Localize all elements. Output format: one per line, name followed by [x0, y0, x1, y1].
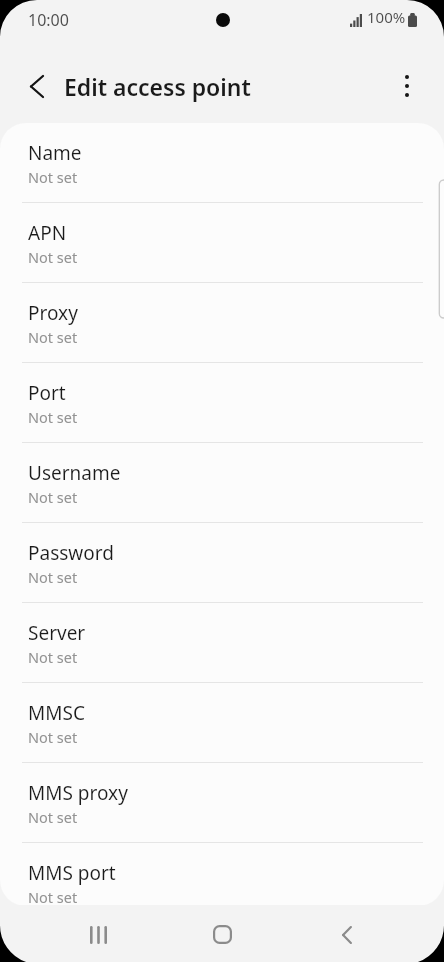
staticText: Not set — [28, 887, 78, 906]
staticText: Port — [28, 380, 66, 406]
staticText: Password — [28, 540, 114, 566]
staticText: APN — [28, 220, 67, 246]
button[interactable]: MMSC — [0, 683, 444, 763]
button[interactable]: MMS port — [0, 843, 444, 906]
staticText: MMSC — [28, 700, 85, 726]
button[interactable]: Proxy — [0, 283, 444, 363]
staticText: 100% — [367, 7, 406, 27]
button[interactable]: Server — [0, 603, 444, 683]
staticText: Not set — [28, 807, 78, 827]
button[interactable]: Home — [194, 905, 251, 962]
button[interactable]: Name — [0, 123, 444, 203]
staticText: Not set — [28, 727, 78, 747]
button[interactable]: Username — [0, 443, 444, 523]
staticText: Edit access point — [64, 71, 251, 102]
staticText: Not set — [28, 327, 78, 347]
staticText: Not set — [28, 247, 78, 267]
button[interactable]: Port — [0, 363, 444, 443]
staticText: Server — [28, 620, 86, 646]
staticText: Name — [28, 140, 82, 166]
staticText: MMS proxy — [28, 780, 128, 806]
staticText: Not set — [28, 167, 78, 187]
staticText: Proxy — [28, 300, 78, 326]
staticText: Not set — [28, 647, 78, 667]
staticText: Username — [28, 460, 121, 486]
button[interactable]: More options — [384, 63, 430, 109]
button[interactable]: Navigate up — [14, 63, 60, 109]
button[interactable]: Recent apps — [70, 905, 127, 962]
staticText: Not set — [28, 567, 78, 587]
button[interactable]: Password — [0, 523, 444, 603]
button[interactable]: Back — [318, 905, 375, 962]
staticText: Not set — [28, 487, 78, 507]
button[interactable]: APN — [0, 203, 444, 283]
staticText: MMS port — [28, 860, 116, 886]
button[interactable]: MMS proxy — [0, 763, 444, 843]
staticText: Not set — [28, 407, 78, 427]
staticText: 10:00 — [28, 9, 69, 31]
